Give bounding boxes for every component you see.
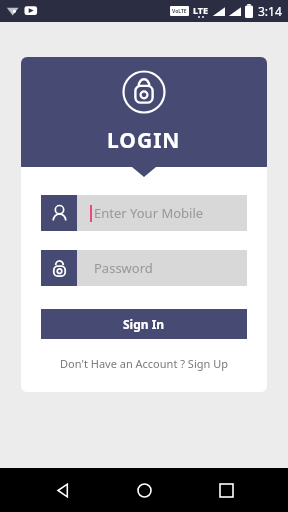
staticText: LTE: [193, 4, 209, 16]
staticText: Don't Have an Account ? Sign Up: [60, 356, 228, 371]
staticText: 3:14: [258, 3, 282, 19]
staticText: LOGIN: [107, 126, 181, 155]
button[interactable]: Back: [42, 470, 82, 510]
other: User: [41, 195, 77, 231]
staticText: Sign In: [123, 316, 165, 332]
button[interactable]: Recents: [206, 470, 246, 510]
other: Password: [41, 250, 77, 286]
button[interactable]: Sign In: [41, 309, 247, 339]
staticText: Password: [94, 259, 153, 277]
staticText: Enter Your Mobile: [94, 204, 204, 222]
button[interactable]: Password: [41, 250, 247, 286]
button[interactable]: Home: [124, 470, 164, 510]
staticText: VoLTE: [172, 8, 187, 15]
button[interactable]: Don't Have an Account ? Sign Up: [21, 356, 267, 371]
button[interactable]: User: [41, 195, 247, 231]
